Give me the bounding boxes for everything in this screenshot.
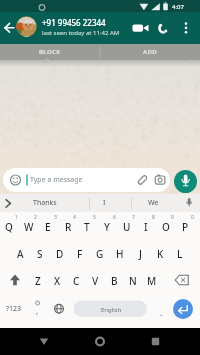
staticText: P xyxy=(182,220,189,234)
staticText: 4:07 xyxy=(172,3,184,11)
staticText: H xyxy=(116,247,124,261)
button[interactable]: I xyxy=(94,194,114,212)
staticText: X xyxy=(54,274,61,288)
staticText: We xyxy=(148,198,159,208)
staticText: L xyxy=(177,247,183,261)
staticText: BLOCK xyxy=(39,48,61,56)
button[interactable]: G xyxy=(90,240,110,267)
button[interactable]: ?123 xyxy=(2,300,26,317)
staticText: 7 xyxy=(132,214,135,221)
button[interactable]: C xyxy=(66,267,86,294)
staticText: Y xyxy=(104,220,110,234)
button[interactable] xyxy=(36,330,52,352)
button[interactable]: P xyxy=(175,213,195,240)
staticText: E xyxy=(45,220,51,234)
staticText: G xyxy=(96,247,104,261)
staticText: Type a message xyxy=(30,175,83,185)
staticText: 3 xyxy=(54,214,57,221)
button[interactable]: B xyxy=(104,267,124,294)
staticText: Q xyxy=(5,220,13,234)
staticText: R xyxy=(65,220,72,234)
staticText: B xyxy=(111,274,118,288)
button[interactable]: X xyxy=(47,267,67,294)
button[interactable]: . xyxy=(155,303,167,320)
button[interactable]: Q xyxy=(0,213,19,240)
button[interactable]: R xyxy=(58,213,78,240)
button[interactable]: N xyxy=(123,267,143,294)
button[interactable] xyxy=(92,330,108,352)
staticText: N xyxy=(129,274,137,288)
button[interactable]: I xyxy=(136,213,156,240)
staticText: 6 xyxy=(113,214,116,221)
button[interactable] xyxy=(154,16,176,40)
button[interactable]: BLOCK xyxy=(0,44,99,60)
button[interactable]: U xyxy=(117,213,137,240)
staticText: T xyxy=(84,220,90,234)
button[interactable]: J xyxy=(130,240,150,267)
staticText: 8 xyxy=(152,214,155,221)
button[interactable] xyxy=(148,330,164,352)
staticText: last seen today at 11:42 AM xyxy=(42,29,120,37)
staticText: U xyxy=(123,220,131,234)
staticText: J xyxy=(139,247,142,261)
staticText: D xyxy=(56,247,64,261)
button[interactable]: L xyxy=(170,240,190,267)
staticText: 0 xyxy=(191,214,194,221)
staticText: W xyxy=(24,220,34,234)
button[interactable]: W xyxy=(19,213,39,240)
staticText: English xyxy=(101,306,122,314)
button[interactable]: Y xyxy=(97,213,117,240)
button[interactable] xyxy=(3,168,170,192)
staticText: ?123 xyxy=(6,304,22,314)
button[interactable]: +91 99456 22344 xyxy=(42,16,132,28)
button[interactable]: O xyxy=(156,213,176,240)
staticText: 2 xyxy=(34,214,37,221)
staticText: 5 xyxy=(93,214,96,221)
button[interactable]: English xyxy=(74,301,148,318)
button[interactable]: T xyxy=(77,213,97,240)
button[interactable]: S xyxy=(30,240,50,267)
button[interactable]: Thanks xyxy=(20,194,70,212)
button[interactable]: E xyxy=(38,213,58,240)
staticText: . xyxy=(160,306,163,318)
button[interactable]: F xyxy=(70,240,90,267)
staticText: I xyxy=(144,220,148,234)
staticText: 9 xyxy=(171,214,174,221)
button[interactable] xyxy=(128,16,152,40)
staticText: A xyxy=(17,247,24,261)
button[interactable]: D xyxy=(50,240,70,267)
staticText: Thanks xyxy=(33,198,57,208)
staticText: +91 99456 22344 xyxy=(42,17,106,28)
staticText: Z xyxy=(35,274,41,288)
button[interactable]: M xyxy=(142,267,162,294)
staticText: I xyxy=(103,198,106,208)
staticText: S xyxy=(37,247,43,261)
staticText: ADD xyxy=(143,48,158,56)
staticText: V xyxy=(92,274,99,288)
button[interactable]: ADD xyxy=(101,44,200,60)
button[interactable]: Z xyxy=(28,267,48,294)
button[interactable] xyxy=(178,16,196,40)
button[interactable]: H xyxy=(110,240,130,267)
button[interactable]: , xyxy=(33,303,42,317)
button[interactable]: A xyxy=(10,240,30,267)
staticText: 4 xyxy=(73,214,76,221)
staticText: 1 xyxy=(15,214,18,221)
button[interactable] xyxy=(174,170,197,193)
staticText: O xyxy=(162,220,170,234)
button[interactable] xyxy=(173,299,193,319)
button[interactable] xyxy=(0,18,18,38)
staticText: C xyxy=(73,274,80,288)
staticText: K xyxy=(157,247,164,261)
button[interactable]: V xyxy=(85,267,105,294)
button[interactable]: K xyxy=(150,240,170,267)
staticText: , xyxy=(36,305,39,316)
staticText: F xyxy=(77,247,83,261)
button[interactable]: We xyxy=(140,194,166,212)
staticText: M xyxy=(147,274,157,288)
